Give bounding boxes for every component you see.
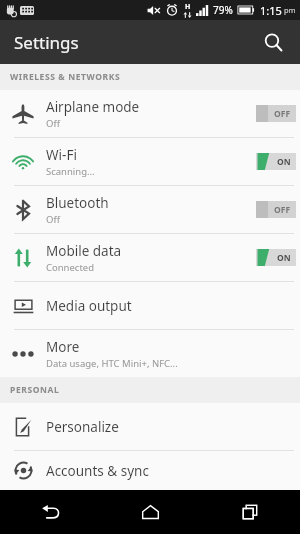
staticText: OFF <box>274 204 291 216</box>
button[interactable]: Home <box>100 490 200 534</box>
staticText: 79% <box>213 3 233 17</box>
button[interactable]: More <box>0 330 300 377</box>
staticText: Off <box>46 213 60 226</box>
staticText: More <box>46 338 80 356</box>
button[interactable]: Search <box>256 25 290 59</box>
staticText: Settings <box>14 31 79 54</box>
button[interactable]: On <box>256 249 296 266</box>
staticText: ON <box>277 252 291 264</box>
staticText: Off <box>46 117 60 130</box>
staticText: Accounts & sync <box>46 462 149 480</box>
button[interactable]: Personalize <box>0 403 300 450</box>
staticText: Wi-Fi <box>46 146 77 164</box>
staticText: Data usage, HTC Mini+, NFC... <box>46 357 178 370</box>
button[interactable]: Mobile data <box>0 234 300 281</box>
button[interactable]: On <box>256 153 296 170</box>
button[interactable]: Off <box>256 105 296 122</box>
staticText: WIRELESS & NETWORKS <box>10 71 121 83</box>
staticText: Mobile data <box>46 242 122 260</box>
staticText: ON <box>277 156 291 168</box>
staticText: Connected <box>46 261 95 274</box>
staticText: Bluetooth <box>46 194 109 212</box>
button[interactable]: Airplane mode <box>0 90 300 137</box>
staticText: OFF <box>274 108 291 120</box>
staticText: Scanning... <box>46 165 95 178</box>
button[interactable]: Recent apps <box>200 490 300 534</box>
staticText: 1:15 <box>260 3 282 18</box>
button[interactable]: Accounts & sync <box>0 451 300 490</box>
staticText: pm <box>284 5 296 15</box>
staticText: Airplane mode <box>46 98 140 116</box>
staticText: Personalize <box>46 418 119 436</box>
button[interactable]: Wi-Fi <box>0 138 300 185</box>
button[interactable]: Back <box>0 490 100 534</box>
button[interactable]: Media output <box>0 282 300 329</box>
staticText: PERSONAL <box>10 384 60 396</box>
staticText: Media output <box>46 297 132 315</box>
staticText: H <box>185 2 191 12</box>
button[interactable]: Off <box>256 201 296 218</box>
button[interactable]: Bluetooth <box>0 186 300 233</box>
